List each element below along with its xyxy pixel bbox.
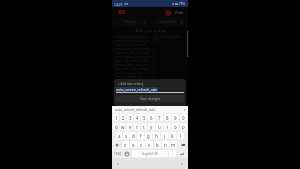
button[interactable]: d	[130, 132, 136, 139]
button[interactable]: b	[154, 141, 161, 148]
button[interactable]: bluetooth_scan_enable	[115, 67, 184, 71]
staticText: c	[140, 142, 143, 148]
button[interactable]: q	[113, 123, 119, 130]
button[interactable]: 6	[148, 114, 155, 121]
staticText: auto_sync_master_sync	[115, 35, 149, 39]
staticText: auto_screen_refresh_rate	[116, 87, 158, 92]
staticText: l	[180, 133, 182, 139]
button[interactable]: Emoji	[123, 150, 131, 157]
button[interactable]: t	[141, 123, 147, 130]
button[interactable]: l	[177, 132, 184, 139]
button[interactable]: 0	[180, 114, 187, 121]
button[interactable]: 5	[141, 114, 147, 121]
button[interactable]: captive_portal_detect	[115, 71, 184, 75]
button[interactable]: auto_screen_refresh_rate	[116, 87, 184, 92]
button[interactable]: 1	[113, 114, 119, 121]
button[interactable]: m	[170, 141, 177, 148]
button[interactable]: auto_backup_mode_active	[115, 55, 184, 59]
staticText: 3	[129, 115, 132, 121]
button[interactable]: i	[164, 123, 171, 130]
button[interactable]: 2	[120, 114, 126, 121]
staticText: p	[182, 124, 185, 130]
button[interactable]: 9	[172, 114, 179, 121]
button[interactable]: z	[122, 141, 129, 148]
staticText: Settings	[117, 20, 143, 24]
button[interactable]: f	[137, 132, 144, 139]
button[interactable]: Enter	[177, 150, 187, 157]
staticText: e	[129, 124, 132, 130]
button[interactable]: g	[145, 132, 152, 139]
staticText: ?123	[114, 152, 121, 156]
button[interactable]: camera_double_tap	[115, 75, 184, 79]
staticText: English (US)	[142, 152, 159, 156]
button[interactable]: Park	[174, 9, 185, 16]
staticText: Latest Data	[154, 20, 180, 24]
button[interactable]: x	[130, 141, 137, 148]
staticText: + Add new setting	[118, 82, 144, 86]
button[interactable]: .	[169, 150, 176, 157]
button[interactable]: ?123	[113, 150, 122, 157]
button[interactable]: More suggestions	[184, 108, 186, 111]
button[interactable]: auto_screen_refresh_rate	[115, 107, 156, 112]
staticText: RD	[118, 8, 126, 16]
staticText: x	[132, 142, 135, 148]
button[interactable]: c	[138, 141, 145, 148]
button[interactable]: 4	[134, 114, 140, 121]
button[interactable]: auto_power_save_mode	[115, 47, 184, 51]
button[interactable]: e	[127, 123, 133, 130]
button[interactable]: Backspace	[178, 141, 187, 148]
staticText: 200	[153, 39, 159, 43]
button[interactable]: u	[156, 123, 163, 130]
button[interactable]: auto_sync_master_sync	[115, 35, 184, 39]
staticText: o	[174, 124, 177, 130]
staticText: browser_http_reduce	[115, 63, 146, 67]
button[interactable]: s	[123, 132, 129, 139]
button[interactable]: w	[120, 123, 126, 130]
button[interactable]: p	[180, 123, 187, 130]
button[interactable]: English (US)	[132, 150, 168, 157]
button[interactable]: 7	[156, 114, 163, 121]
button[interactable]: k	[169, 132, 176, 139]
button[interactable]: Shift	[113, 141, 121, 148]
button[interactable]: n	[162, 141, 169, 148]
button[interactable]: o	[172, 123, 179, 130]
button[interactable]: j	[161, 132, 168, 139]
button[interactable]: 3	[127, 114, 133, 121]
button[interactable]: a	[116, 132, 122, 139]
staticText: auto_connect_wifi_ssid	[115, 51, 149, 55]
button[interactable]: Settings	[115, 19, 148, 25]
staticText: 9	[174, 115, 177, 121]
staticText: camera_double_tap	[115, 75, 144, 79]
button[interactable]: Save changes	[116, 95, 184, 102]
staticText: b	[156, 142, 159, 148]
button[interactable]: v	[146, 141, 153, 148]
button[interactable]: auto_rotate_display_on	[115, 39, 184, 43]
staticText: k	[171, 133, 174, 139]
button[interactable]: 8	[164, 114, 171, 121]
staticText: s	[125, 133, 128, 139]
button[interactable]: Latest Data	[152, 19, 185, 25]
staticText: auto_rotate_display_on	[115, 39, 149, 43]
staticText: y	[150, 124, 153, 130]
button[interactable]: + Add new setting	[115, 28, 184, 33]
staticText: ▾	[184, 108, 186, 111]
button[interactable]: h	[153, 132, 160, 139]
button[interactable]: Record	[165, 10, 171, 16]
staticText: 78%	[179, 2, 186, 6]
staticText: 14:27	[114, 2, 123, 6]
staticText: z	[124, 142, 127, 148]
button[interactable]: y	[148, 123, 155, 130]
button[interactable]: r	[134, 123, 140, 130]
staticText: .	[172, 151, 174, 156]
staticText: g	[147, 133, 150, 139]
staticText: n	[164, 142, 167, 148]
button[interactable]: + Add new setting	[118, 82, 144, 86]
